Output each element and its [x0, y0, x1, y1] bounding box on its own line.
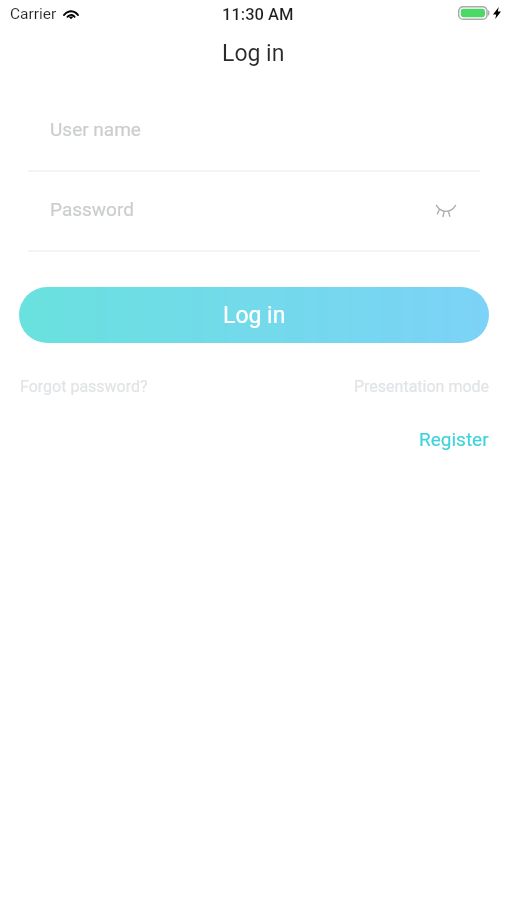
- staticText: Carrier: [10, 5, 57, 23]
- staticText: 11:30 AM: [222, 5, 294, 24]
- staticText: Forgot password?: [20, 377, 148, 396]
- button[interactable]: Register: [419, 424, 489, 446]
- button[interactable]: Log in: [19, 287, 489, 343]
- staticText: Log in: [223, 302, 286, 329]
- staticText: Password: [50, 198, 134, 220]
- button[interactable]: Show password: [419, 190, 473, 232]
- button[interactable]: Forgot password?: [20, 373, 148, 401]
- staticText: Log in: [222, 40, 285, 67]
- button[interactable]: Presentation mode: [354, 373, 490, 392]
- staticText: User name: [50, 118, 141, 140]
- button[interactable]: Password: [28, 190, 480, 250]
- staticText: Register: [419, 428, 489, 450]
- staticText: Presentation mode: [354, 377, 490, 396]
- button[interactable]: User name: [28, 110, 480, 170]
